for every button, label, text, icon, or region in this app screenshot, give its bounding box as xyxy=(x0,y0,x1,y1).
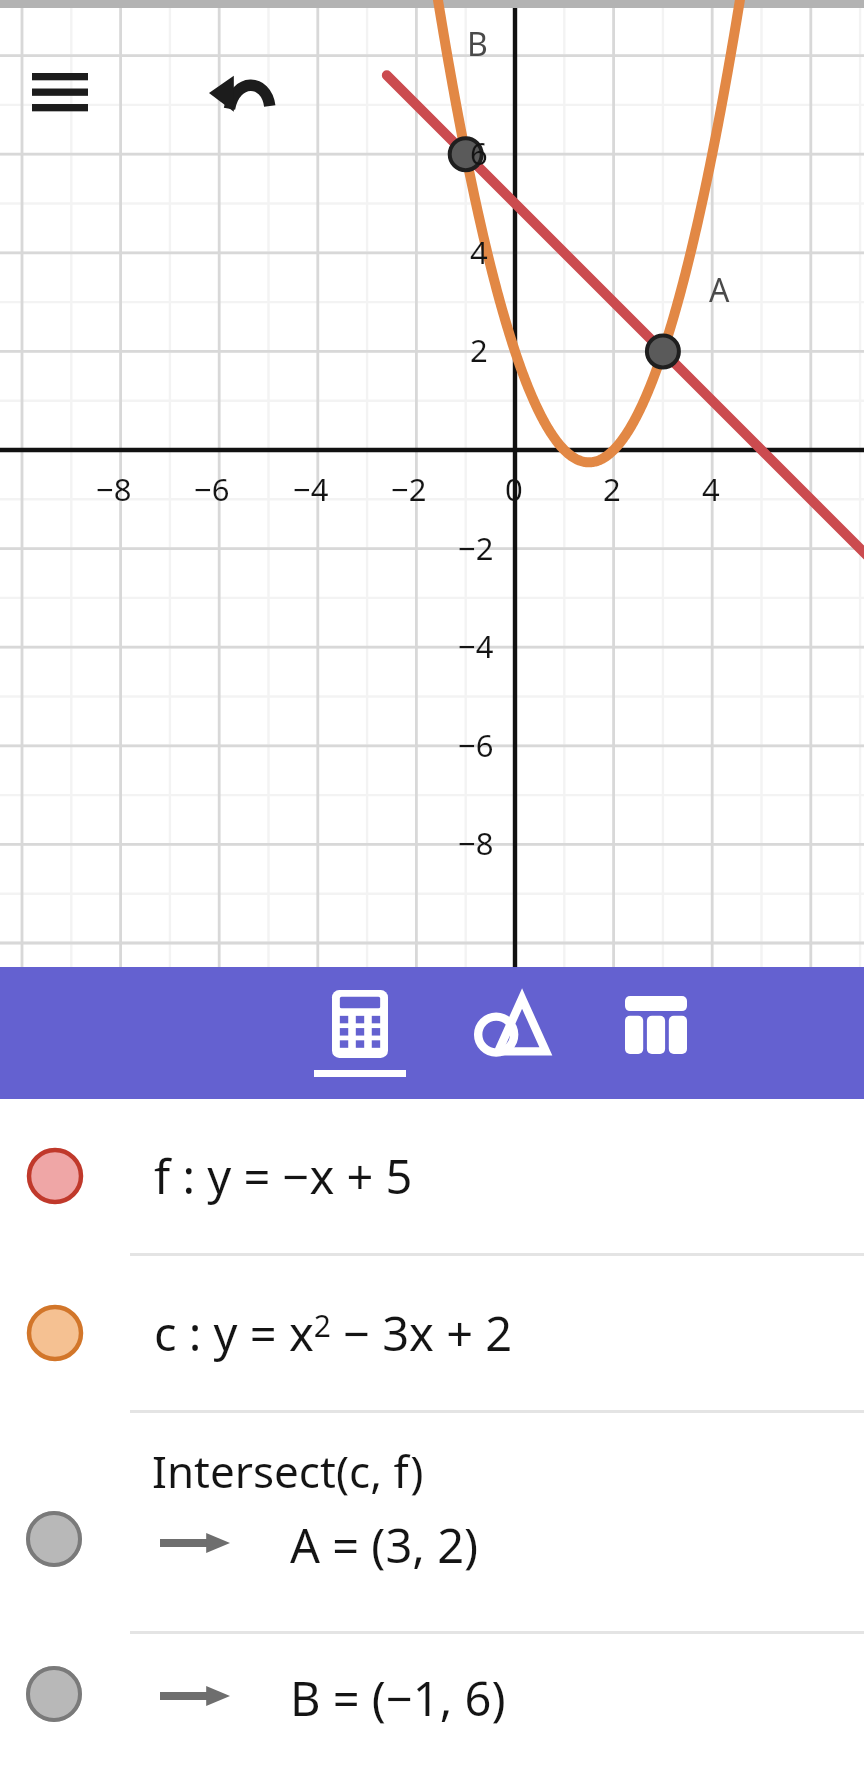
staticText: −6 xyxy=(458,724,494,766)
staticText: 2 xyxy=(470,329,488,371)
staticText: −8 xyxy=(458,822,494,864)
button[interactable]: f : y = −x + 5 xyxy=(0,1099,864,1253)
staticText: −4 xyxy=(293,468,329,510)
button[interactable]: Tools xyxy=(452,967,572,1099)
staticText: −2 xyxy=(458,527,494,569)
button[interactable]: Calculator xyxy=(290,967,430,1099)
staticText: Intersect(c, f) xyxy=(152,1441,424,1501)
staticText: −4 xyxy=(458,625,494,667)
button[interactable]: Intersect(c, f) xyxy=(0,1413,864,1631)
button[interactable]: c : y = x2 − 3x + 2 xyxy=(0,1256,864,1410)
staticText: B xyxy=(467,22,488,66)
staticText: f : y = −x + 5 xyxy=(154,1144,413,1208)
button[interactable]: Menu xyxy=(20,52,100,132)
button[interactable]: Undo xyxy=(200,52,280,132)
staticText: A = (3, 2) xyxy=(290,1513,479,1577)
staticText: −8 xyxy=(96,468,132,510)
staticText: B = (−1, 6) xyxy=(290,1666,506,1730)
staticText: 2 xyxy=(603,468,621,510)
staticText: 6 xyxy=(470,132,488,174)
button[interactable]: Table xyxy=(596,967,716,1099)
staticText: −2 xyxy=(391,468,427,510)
staticText: A xyxy=(709,268,730,312)
staticText: c : y = x2 − 3x + 2 xyxy=(154,1301,513,1365)
staticText: −6 xyxy=(194,468,230,510)
button[interactable]: B = (−1, 6) xyxy=(0,1634,864,1776)
staticText: 0 xyxy=(505,468,523,510)
staticText: 4 xyxy=(470,231,488,273)
staticText: 4 xyxy=(702,468,720,510)
